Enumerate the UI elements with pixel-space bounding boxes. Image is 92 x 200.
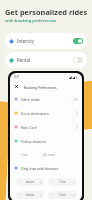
staticText: 3 km — [59, 180, 66, 184]
button[interactable]: − — [16, 178, 44, 186]
staticText: Get personalized rides — [5, 7, 87, 17]
staticText: − — [18, 180, 20, 184]
staticText: Intercity — [17, 38, 35, 44]
staticText: + — [73, 193, 75, 197]
staticText: Rental — [17, 57, 31, 63]
button[interactable]: Pickup distance — [10, 134, 82, 148]
button[interactable]: Rental — [5, 52, 87, 68]
staticText: above — [26, 180, 35, 184]
button[interactable]: − — [48, 191, 77, 199]
staticText: + — [40, 180, 42, 184]
button[interactable]: Intercity — [5, 33, 87, 49]
button[interactable]: Silent mode — [10, 92, 82, 106]
staticText: below — [26, 193, 35, 197]
staticText: − — [18, 193, 20, 197]
staticText: Pickup distance — [21, 139, 46, 144]
staticText: 20+ mins — [43, 153, 55, 157]
button[interactable]: − — [16, 191, 44, 199]
button[interactable]: Close — [14, 84, 19, 89]
staticText: 1 km — [21, 153, 28, 157]
button[interactable]: Only trips with distance — [10, 161, 82, 175]
staticText: Booking Preferences — [24, 85, 57, 89]
staticText: Rato Card — [21, 125, 37, 130]
button[interactable]: Rato Card — [10, 120, 82, 134]
staticText: + — [73, 180, 75, 184]
button[interactable]: Go-to destination — [10, 106, 82, 120]
staticText: 9:41 — [14, 75, 20, 79]
staticText: − — [50, 193, 52, 197]
staticText: 5 km — [59, 193, 66, 197]
staticText: Only trips with distance — [21, 166, 59, 171]
staticText: Silent mode — [21, 97, 40, 102]
staticText: + — [40, 193, 42, 197]
button[interactable]: − — [48, 178, 77, 186]
staticText: Go-to destination — [21, 111, 49, 116]
staticText: with booking preferences — [5, 18, 57, 24]
staticText: − — [50, 180, 52, 184]
